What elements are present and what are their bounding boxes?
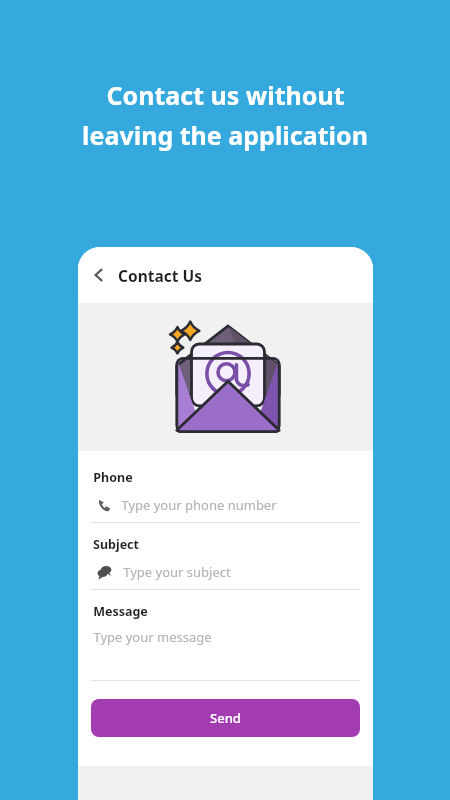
- staticText: Contact us without: [106, 78, 345, 112]
- staticText: Message: [93, 603, 148, 620]
- staticText: Phone: [93, 469, 133, 486]
- button[interactable]: Type your message: [91, 622, 360, 680]
- staticText: Subject: [93, 536, 139, 553]
- staticText: Type your phone number: [121, 496, 277, 514]
- staticText: Contact Us: [118, 265, 202, 286]
- staticText: Type your subject: [123, 563, 231, 581]
- button[interactable]: Type your subject: [91, 555, 360, 589]
- staticText: leaving the application: [82, 118, 368, 152]
- staticText: Send: [210, 709, 241, 727]
- button[interactable]: Send: [91, 699, 360, 737]
- button[interactable]: Type your phone number: [91, 488, 360, 522]
- staticText: Type your message: [93, 628, 212, 646]
- button[interactable]: Back: [84, 260, 114, 290]
